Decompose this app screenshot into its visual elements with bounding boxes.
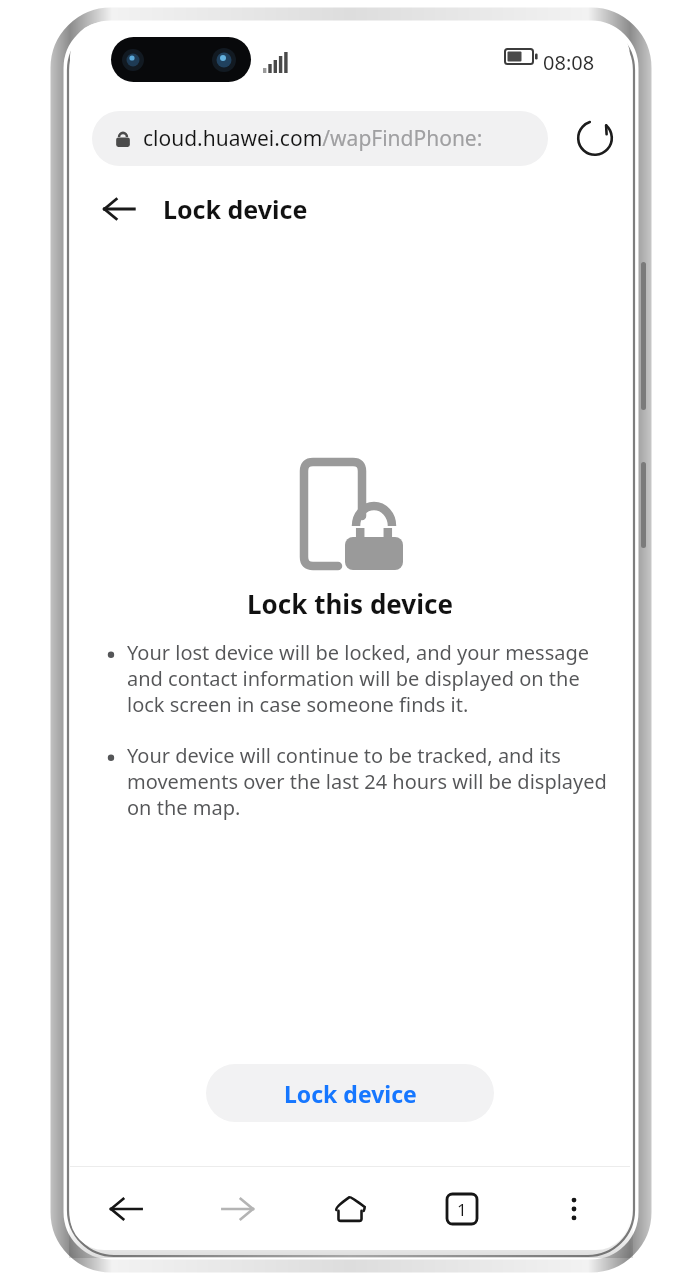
- button[interactable]: cloud.huawei.com/wapFindPhone:: [92, 111, 548, 166]
- button[interactable]: Lock device: [206, 1064, 494, 1122]
- button[interactable]: Tabs: [406, 1167, 518, 1250]
- button[interactable]: Forward: [182, 1167, 294, 1250]
- button[interactable]: More options: [518, 1167, 630, 1250]
- button[interactable]: Reload: [574, 117, 616, 159]
- staticText: Your device will continue to be tracked,…: [127, 742, 608, 821]
- staticText: Lock this device: [247, 586, 453, 621]
- staticText: 08:08: [543, 49, 595, 76]
- button[interactable]: Back: [70, 1167, 182, 1250]
- staticText: Your lost device will be locked, and you…: [127, 639, 608, 718]
- button[interactable]: Back: [97, 187, 141, 231]
- staticText: 1: [457, 1198, 467, 1221]
- staticText: Lock device: [284, 1078, 417, 1109]
- button[interactable]: Home: [294, 1167, 406, 1250]
- staticText: cloud.huawei.com/wapFindPhone:: [143, 124, 483, 153]
- staticText: Lock device: [163, 192, 308, 226]
